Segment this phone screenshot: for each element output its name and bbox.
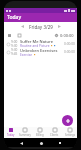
- button[interactable]: Summary: [18, 127, 32, 138]
- staticText: Exercise: [20, 53, 33, 56]
- button[interactable]: Settings: [62, 127, 77, 138]
- staticText: Suffer Me Nature: [20, 39, 53, 44]
- staticText: Friday 3/29: [29, 24, 53, 30]
- staticText: Today: [7, 133, 15, 137]
- button[interactable]: List view: [7, 33, 12, 38]
- button[interactable]: Filter: [17, 33, 22, 38]
- button[interactable]: Toggle complete: [4, 48, 77, 56]
- staticText: 9:30: [11, 48, 18, 52]
- staticText: Today: [7, 14, 22, 21]
- staticText: Unbroken Exercises: [20, 48, 58, 53]
- staticText: 9:30: [11, 44, 18, 48]
- staticText: 0:00:00: [64, 42, 75, 46]
- staticText: 9:45: [11, 52, 18, 56]
- button[interactable]: Next day: [57, 24, 62, 29]
- staticText: Clients: [50, 133, 59, 137]
- staticText: Summary: [19, 133, 31, 137]
- staticText: Settings: [65, 133, 75, 137]
- button[interactable]: Clients: [47, 127, 62, 138]
- button[interactable]: Previous day: [20, 24, 25, 29]
- button[interactable]: Previous day: [4, 22, 77, 31]
- button[interactable]: Toggle complete: [4, 39, 77, 48]
- staticText: 0:00:00: [60, 33, 74, 38]
- button[interactable]: Recents: [58, 141, 62, 145]
- button[interactable]: Toggle complete: [6, 42, 10, 46]
- staticText: 9:00: [11, 40, 18, 44]
- button[interactable]: Back: [19, 141, 23, 145]
- staticText: 0:00:00: [64, 50, 75, 54]
- button[interactable]: Billing: [32, 127, 47, 138]
- staticText: Routine and Picture: [20, 44, 50, 48]
- button[interactable]: Home: [39, 141, 43, 145]
- button[interactable]: Add entry: [62, 115, 73, 126]
- button[interactable]: Toggle complete: [6, 50, 10, 54]
- button[interactable]: Today: [4, 127, 18, 138]
- staticText: Billing: [36, 133, 44, 137]
